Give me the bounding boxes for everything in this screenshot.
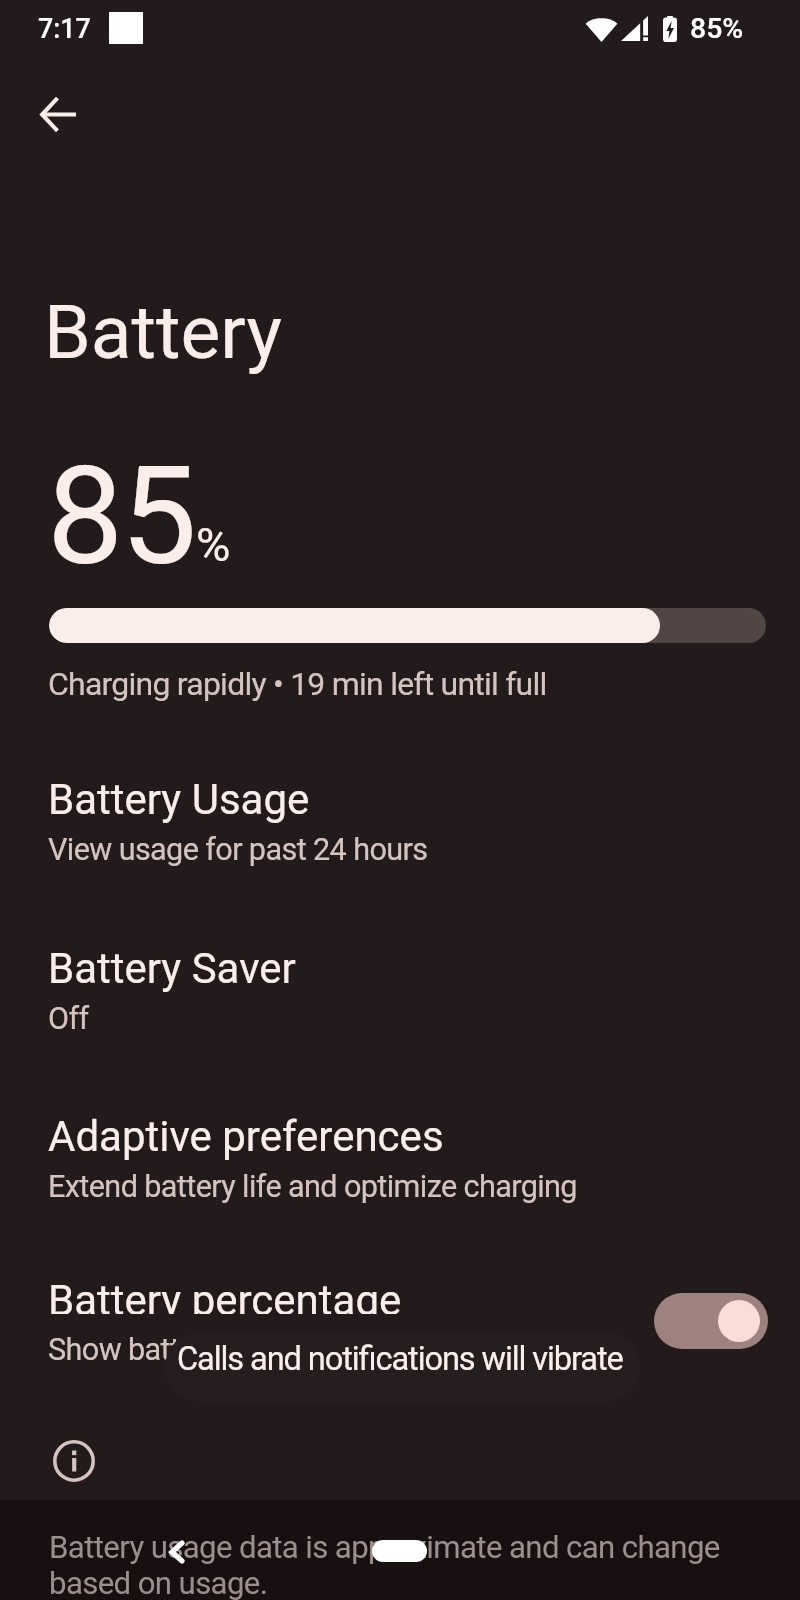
button[interactable]: Adaptive preferences bbox=[0, 1064, 800, 1253]
staticText: Calls and notifications will vibrate bbox=[177, 1340, 623, 1378]
staticText: 7:17 bbox=[38, 13, 91, 44]
button[interactable]: Back bbox=[41, 97, 76, 132]
staticText: Adaptive preferences bbox=[48, 1112, 444, 1161]
staticText: 85% bbox=[690, 12, 744, 45]
staticText: Charging rapidly • 19 min left until ful… bbox=[48, 665, 547, 703]
button[interactable]: Battery Saver bbox=[0, 896, 800, 1085]
staticText: Battery percentage bbox=[48, 1276, 402, 1314]
staticText: % bbox=[196, 517, 231, 572]
button[interactable]: Battery percentage toggle bbox=[654, 1293, 768, 1349]
staticText: Battery usage data is approximate and ca… bbox=[49, 1529, 720, 1566]
staticText: based on usage. bbox=[49, 1565, 268, 1600]
staticText: Battery Saver bbox=[48, 944, 296, 993]
staticText: View usage for past 24 hours bbox=[48, 832, 428, 868]
staticText: Battery Usage bbox=[48, 775, 310, 824]
staticText: Off bbox=[48, 1001, 89, 1037]
staticText: 85 bbox=[47, 437, 195, 596]
staticText: Extend battery life and optimize chargin… bbox=[48, 1169, 577, 1205]
button[interactable]: Battery percentage bbox=[0, 1228, 800, 1416]
staticText: Battery bbox=[44, 288, 282, 376]
button[interactable]: Battery Usage bbox=[0, 727, 800, 916]
button[interactable]: About battery usage bbox=[53, 1440, 95, 1482]
staticText: Show battery percentage in status bar bbox=[48, 1332, 541, 1368]
